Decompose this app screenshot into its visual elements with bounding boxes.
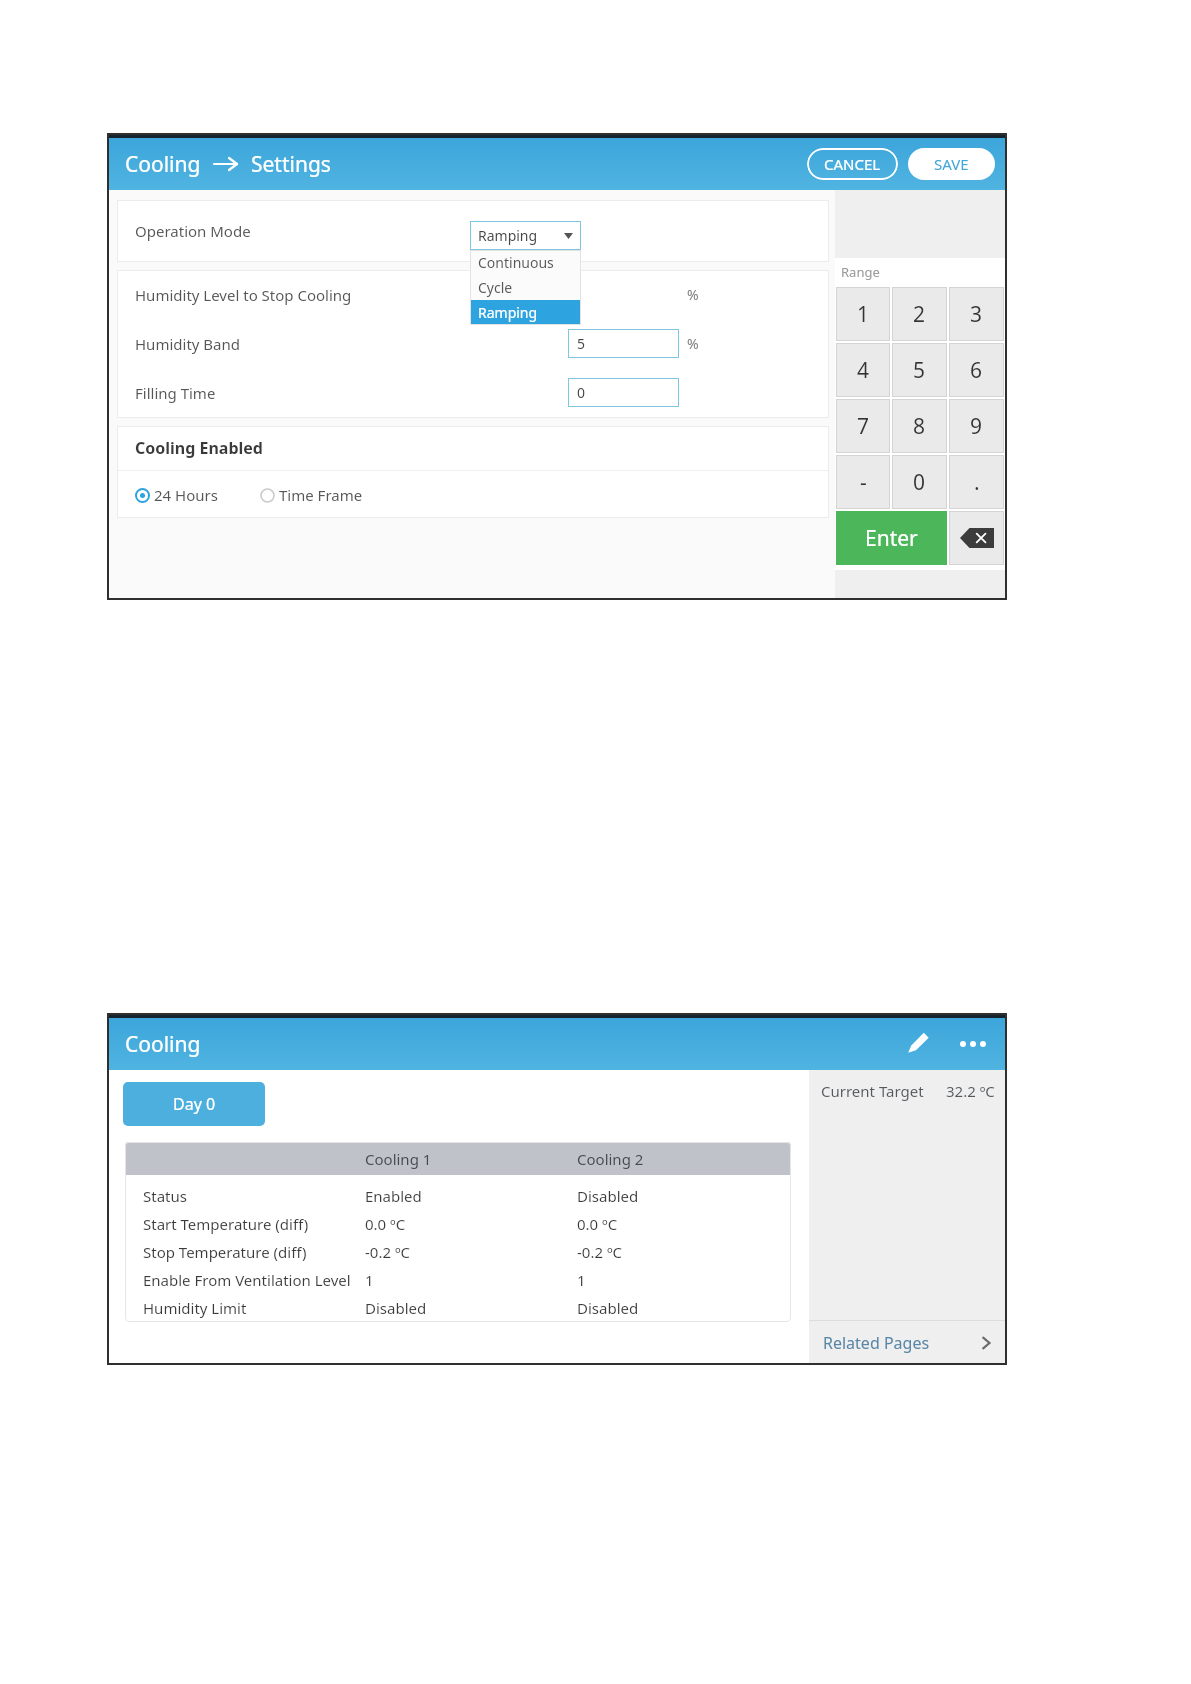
button[interactable]: 0 bbox=[892, 455, 947, 509]
staticText: . bbox=[974, 468, 980, 497]
staticText: Humidity Band bbox=[135, 334, 241, 354]
button[interactable]: Day 0 bbox=[123, 1082, 265, 1126]
staticText: - bbox=[860, 468, 867, 497]
staticText: 32.2 ºC bbox=[946, 1081, 995, 1101]
button[interactable]: CANCEL bbox=[807, 148, 898, 180]
staticText: Disabled bbox=[577, 1186, 639, 1206]
staticText: 2 bbox=[913, 300, 926, 329]
button[interactable]: 4 bbox=[836, 343, 890, 397]
staticText: SAVE bbox=[934, 154, 969, 174]
staticText: Status bbox=[143, 1186, 187, 1206]
button[interactable]: Enter bbox=[836, 511, 947, 565]
staticText: CANCEL bbox=[824, 154, 881, 174]
staticText: Start Temperature (diff) bbox=[143, 1214, 309, 1234]
staticText: 7 bbox=[857, 412, 870, 441]
staticText: Enabled bbox=[365, 1186, 422, 1206]
staticText: 5 bbox=[577, 334, 586, 353]
button[interactable]: 8 bbox=[892, 399, 947, 453]
staticText: Current Target bbox=[821, 1081, 924, 1101]
staticText: Humidity Level to Stop Cooling bbox=[135, 285, 352, 305]
button[interactable]: 24 Hours bbox=[135, 485, 218, 505]
button[interactable]: Ramping bbox=[470, 300, 581, 325]
staticText: Ramping bbox=[478, 303, 538, 322]
staticText: 24 Hours bbox=[154, 485, 218, 505]
button[interactable]: 2 bbox=[892, 287, 947, 341]
staticText: Humidity Limit bbox=[143, 1298, 247, 1318]
staticText: 0 bbox=[577, 383, 586, 402]
button[interactable]: 9 bbox=[949, 399, 1004, 453]
staticText: 9 bbox=[970, 412, 983, 441]
staticText: -0.2 ºC bbox=[365, 1242, 411, 1262]
button[interactable]: SAVE bbox=[908, 148, 995, 180]
staticText: 5 bbox=[913, 356, 926, 385]
button[interactable]: . bbox=[949, 455, 1004, 509]
button[interactable]: 5 bbox=[892, 343, 947, 397]
staticText: 0.0 ºC bbox=[577, 1214, 618, 1234]
staticText: 3 bbox=[970, 300, 983, 329]
button[interactable]: Cycle bbox=[470, 275, 581, 300]
staticText: Cooling 2 bbox=[577, 1149, 644, 1169]
staticText: Stop Temperature (diff) bbox=[143, 1242, 307, 1262]
staticText: Cooling Enabled bbox=[135, 437, 263, 459]
staticText: 8 bbox=[913, 412, 926, 441]
staticText: Cooling 1 bbox=[365, 1149, 432, 1169]
staticText: 0.0 ºC bbox=[365, 1214, 406, 1234]
button[interactable]: More options bbox=[953, 1024, 993, 1064]
staticText: 6 bbox=[970, 356, 983, 385]
staticText: Day 0 bbox=[173, 1093, 216, 1115]
staticText: Enter bbox=[865, 524, 918, 553]
button[interactable]: 7 bbox=[836, 399, 890, 453]
button[interactable]: 6 bbox=[949, 343, 1004, 397]
staticText: % bbox=[687, 285, 699, 304]
staticText: 4 bbox=[857, 356, 870, 385]
staticText: % bbox=[687, 334, 699, 353]
staticText: Continuous bbox=[478, 253, 554, 272]
staticText: -0.2 ºC bbox=[577, 1242, 623, 1262]
button[interactable]: Time Frame bbox=[260, 485, 363, 505]
button[interactable]: 3 bbox=[949, 287, 1004, 341]
staticText: Enable From Ventilation Level bbox=[143, 1270, 351, 1290]
staticText: Time Frame bbox=[279, 485, 363, 505]
staticText: Related Pages bbox=[823, 1332, 930, 1354]
button[interactable]: 0 bbox=[568, 378, 679, 407]
button[interactable]: Backspace bbox=[949, 511, 1004, 565]
staticText: 1 bbox=[365, 1270, 374, 1290]
staticText: Cooling bbox=[125, 1030, 201, 1059]
staticText: Operation Mode bbox=[135, 221, 251, 241]
button[interactable]: Continuous bbox=[470, 250, 581, 275]
staticText: Filling Time bbox=[135, 383, 216, 403]
staticText: Disabled bbox=[365, 1298, 427, 1318]
staticText: Ramping bbox=[478, 226, 538, 245]
staticText: 0 bbox=[913, 468, 926, 497]
staticText: 1 bbox=[577, 1270, 586, 1290]
button[interactable] bbox=[568, 280, 679, 309]
button[interactable]: Edit bbox=[897, 1024, 937, 1064]
button[interactable]: 5 bbox=[568, 329, 679, 358]
staticText: Cooling bbox=[125, 150, 201, 179]
staticText: Settings bbox=[251, 150, 331, 179]
button[interactable]: Related Pages bbox=[809, 1321, 1007, 1365]
staticText: Range bbox=[841, 263, 880, 281]
button[interactable]: 1 bbox=[836, 287, 890, 341]
staticText: Disabled bbox=[577, 1298, 639, 1318]
staticText: 1 bbox=[857, 300, 870, 329]
button[interactable]: - bbox=[836, 455, 890, 509]
staticText: Cycle bbox=[478, 278, 513, 297]
button[interactable]: Ramping bbox=[470, 221, 581, 250]
